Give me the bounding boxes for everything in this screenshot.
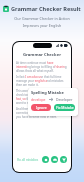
staticText: Grammar Checker xyxy=(13,52,71,58)
staticText: Ignore xyxy=(36,105,47,110)
staticText: At time continue must have interesting b… xyxy=(16,61,68,73)
button[interactable]: Refresh xyxy=(42,156,49,163)
staticText: Fix all mistakes xyxy=(17,158,39,162)
staticText: In fact I am also use that full time man… xyxy=(16,75,68,87)
staticText: develope xyxy=(31,97,46,102)
button[interactable]: Fix Mistake xyxy=(54,104,75,111)
staticText: Improves your English xyxy=(0,23,84,28)
staticText: Fix Mistake xyxy=(56,105,74,110)
button[interactable]: Ignore xyxy=(31,104,51,111)
staticText: Spelling Mistake xyxy=(31,90,64,95)
staticText: And then we suggest the best correction … xyxy=(16,107,68,119)
button[interactable]: Filter xyxy=(60,156,67,163)
staticText: Developer xyxy=(56,97,73,102)
button[interactable]: Upload xyxy=(51,156,58,163)
staticText: Grammar Checker Result xyxy=(11,5,81,13)
staticText: Our Grammar Checker in Action xyxy=(0,16,84,21)
staticText: This word is not right here. The spell c… xyxy=(16,89,68,105)
